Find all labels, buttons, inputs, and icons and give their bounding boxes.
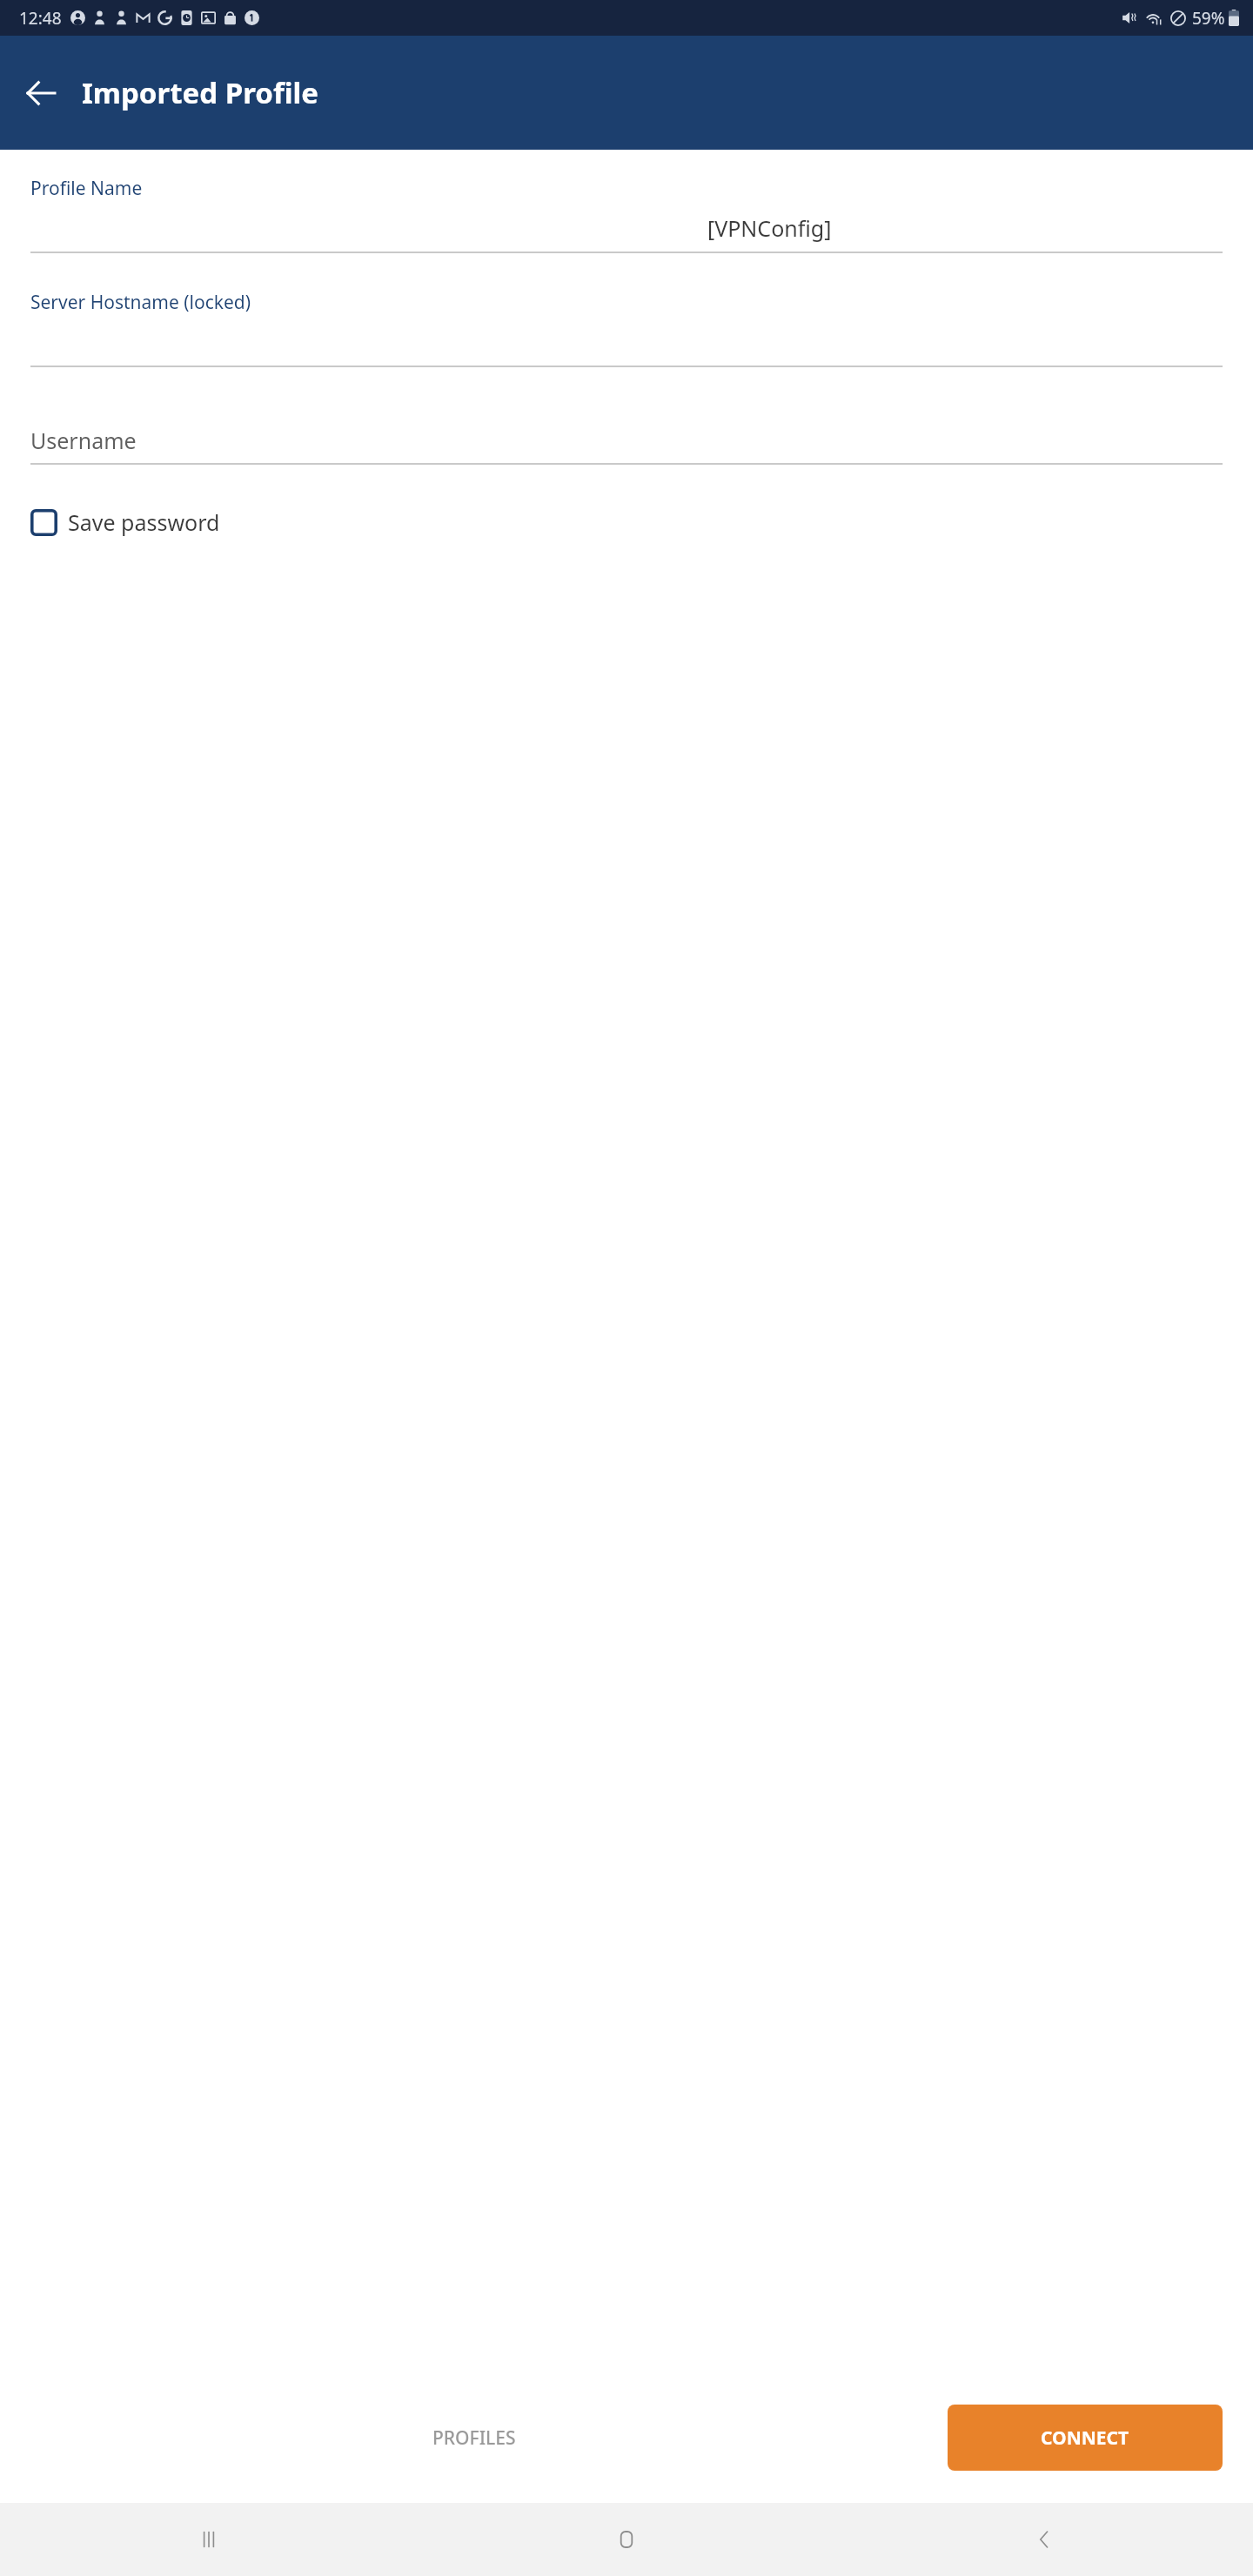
staticText: 59%	[1192, 7, 1225, 30]
staticText: Username	[30, 426, 137, 455]
button[interactable]: Back	[14, 66, 68, 120]
button[interactable]: Recents	[0, 2503, 418, 2576]
staticText: PROFILES	[432, 2425, 516, 2451]
staticText: Profile Name	[30, 176, 143, 201]
button[interactable]: Home	[418, 2503, 835, 2576]
button[interactable]: Username	[30, 421, 1223, 460]
staticText: Save password	[68, 507, 220, 537]
staticText: Server Hostname (locked)	[30, 290, 251, 315]
staticText: 12:48	[19, 7, 62, 30]
button[interactable]: CONNECT	[948, 2405, 1223, 2471]
button[interactable]: Save password	[30, 500, 220, 545]
button[interactable]: PROFILES	[0, 2372, 948, 2503]
staticText: CONNECT	[1041, 2425, 1129, 2451]
button[interactable]: [VPNConfig]	[30, 210, 1223, 246]
staticText: Imported Profile	[82, 73, 319, 112]
staticText: [VPNConfig]	[707, 213, 832, 243]
